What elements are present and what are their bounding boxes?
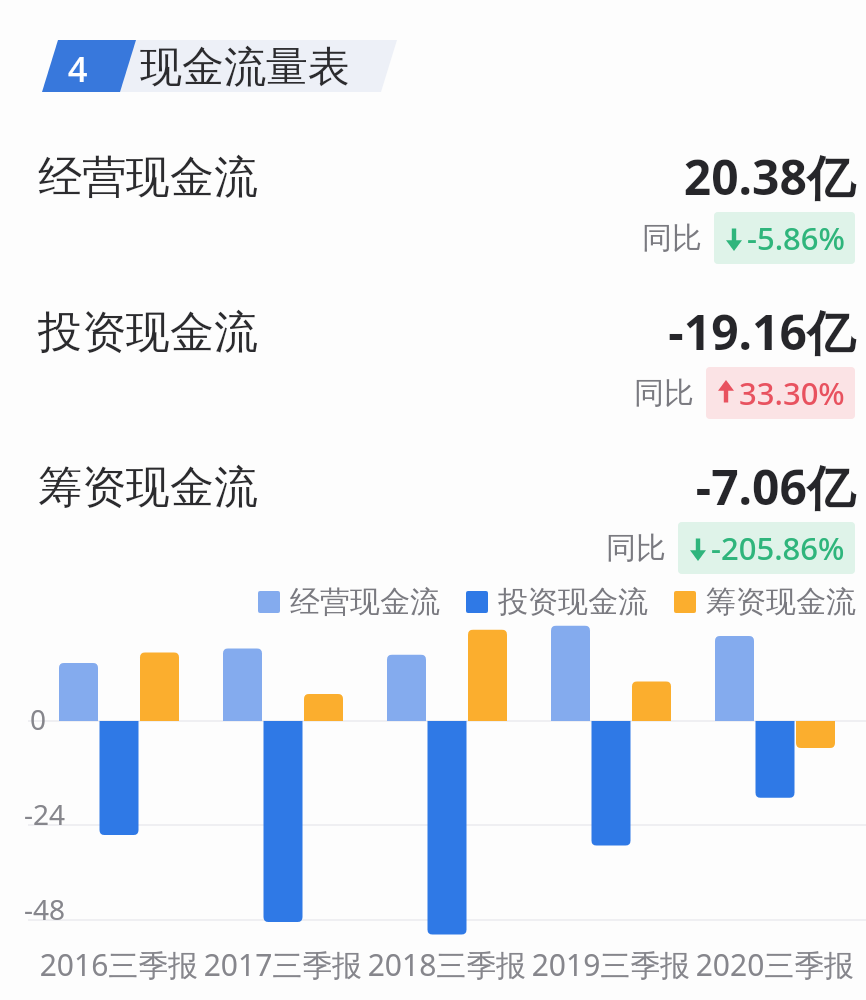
button[interactable]: 筹资现金流 xyxy=(0,450,866,590)
button[interactable]: 2020三季报 xyxy=(685,944,865,985)
staticText: 筹资现金流 xyxy=(38,460,258,515)
staticText: 33.30% xyxy=(739,372,845,414)
staticText: 同比 xyxy=(642,219,702,257)
staticText: 现金流量表 xyxy=(140,41,350,94)
staticText: 2019三季报 xyxy=(521,944,701,985)
other: 上升 xyxy=(716,379,736,407)
button[interactable]: 下降 xyxy=(688,527,845,569)
staticText: 20.38亿 xyxy=(390,144,855,210)
staticText: 经营现金流 xyxy=(290,583,440,621)
staticText: 投资现金流 xyxy=(38,305,258,360)
button[interactable]: 2018三季报 xyxy=(357,944,537,985)
staticText: -7.06亿 xyxy=(390,454,855,520)
button[interactable]: 投资现金流 xyxy=(0,295,866,435)
other: 下降 xyxy=(724,224,744,252)
button[interactable]: 经营现金流 xyxy=(0,140,866,280)
staticText: 2017三季报 xyxy=(193,944,373,985)
staticText: 2018三季报 xyxy=(357,944,537,985)
button[interactable]: 2017三季报 xyxy=(193,944,373,985)
staticText: 投资现金流 xyxy=(498,583,648,621)
button[interactable]: 4 xyxy=(0,28,866,108)
staticText: 0 xyxy=(30,700,47,738)
button[interactable]: 2019三季报 xyxy=(521,944,701,985)
staticText: 同比 xyxy=(606,529,666,567)
staticText: 同比 xyxy=(634,374,694,412)
staticText: 经营现金流 xyxy=(38,150,258,205)
staticText: 2020三季报 xyxy=(685,944,865,985)
staticText: -48 xyxy=(24,890,66,928)
button[interactable]: 2016三季报 xyxy=(29,944,209,985)
staticText: 筹资现金流 xyxy=(706,583,856,621)
button[interactable]: 经营现金流 xyxy=(258,583,440,621)
staticText: 2016三季报 xyxy=(29,944,209,985)
button[interactable]: 投资现金流 xyxy=(466,583,648,621)
staticText: -5.86% xyxy=(747,217,845,259)
button[interactable]: 下降 xyxy=(724,217,845,259)
staticText: -19.16亿 xyxy=(390,299,855,365)
button[interactable]: 筹资现金流 xyxy=(674,583,856,621)
staticText: -205.86% xyxy=(711,527,845,569)
staticText: 4 xyxy=(68,46,88,92)
button[interactable]: 上升 xyxy=(716,372,845,414)
staticText: -24 xyxy=(24,795,66,833)
other: 下降 xyxy=(688,534,708,562)
